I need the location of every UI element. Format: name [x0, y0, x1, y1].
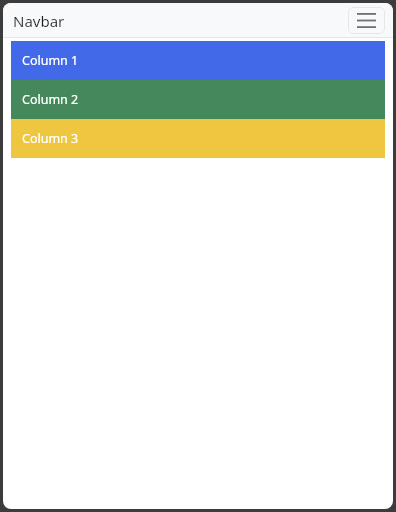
button[interactable]: Toggle navigation — [348, 7, 385, 34]
staticText: Column 2 — [22, 91, 79, 108]
staticText: Column 1 — [22, 52, 79, 69]
staticText: Column 3 — [22, 130, 79, 147]
button[interactable]: Column 2 — [11, 80, 385, 119]
button[interactable]: Navbar — [3, 11, 348, 31]
staticText: Navbar — [13, 11, 65, 31]
button[interactable]: Column 1 — [11, 41, 385, 80]
button[interactable]: Column 3 — [11, 119, 385, 158]
